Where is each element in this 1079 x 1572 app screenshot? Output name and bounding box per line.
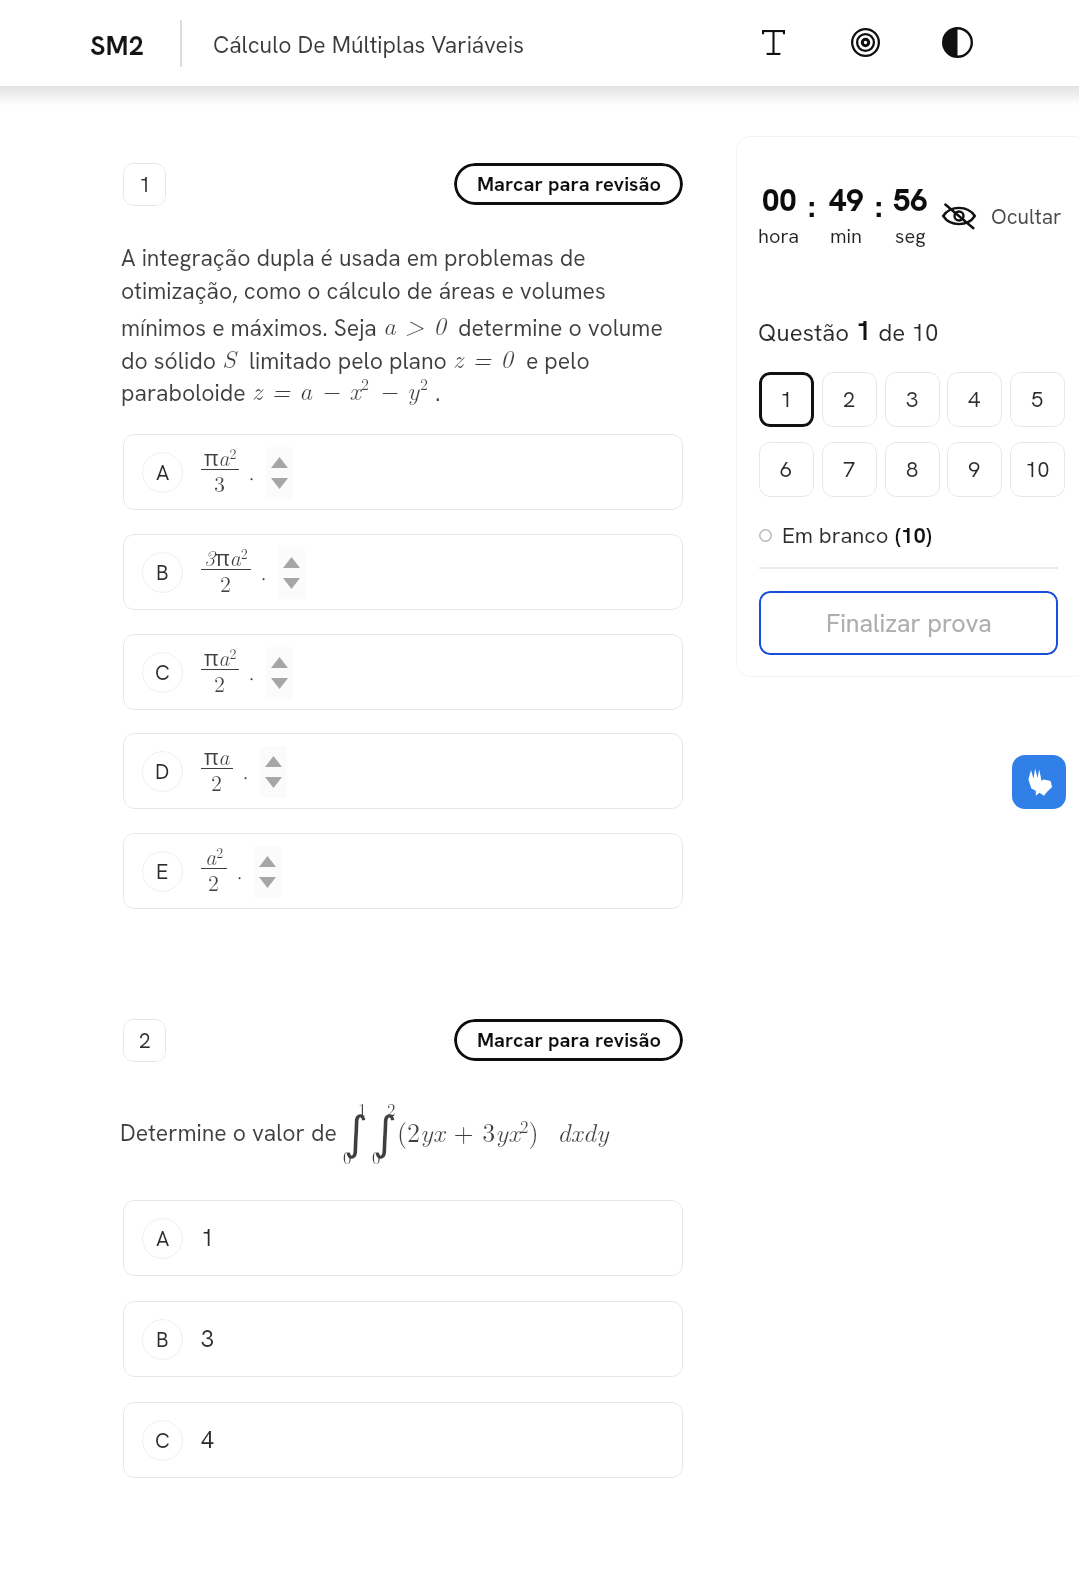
- staticText: 1: [139, 171, 151, 198]
- staticText: ·: [243, 462, 261, 493]
- staticText: a > 0: [383, 307, 446, 342]
- button[interactable]: 1: [123, 163, 166, 206]
- staticText: 2: [208, 866, 220, 897]
- staticText: 10: [1025, 455, 1050, 484]
- staticText: 1: [201, 1223, 214, 1253]
- button[interactable]: E: [123, 833, 683, 909]
- staticText: 1: [780, 385, 793, 414]
- staticText: 5: [1031, 385, 1044, 414]
- staticText: 00: [762, 180, 797, 220]
- staticText: Em branco: [782, 521, 895, 550]
- staticText: Determine o valor de: [120, 1118, 343, 1148]
- staticText: 2: [387, 1097, 396, 1121]
- staticText: − y: [370, 372, 420, 407]
- staticText: A: [156, 459, 170, 486]
- button[interactable]: 4: [947, 372, 1002, 427]
- staticText: πa2: [204, 441, 237, 472]
- staticText: ·: [243, 662, 261, 693]
- staticText: 8: [906, 455, 919, 484]
- staticText: S: [222, 340, 237, 375]
- staticText: C: [155, 659, 170, 686]
- staticText: Cálculo De Múltiplas Variáveis: [213, 30, 525, 60]
- button[interactable]: A: [123, 434, 683, 510]
- staticText: 2: [220, 567, 232, 598]
- button[interactable]: A: [123, 1200, 683, 1276]
- staticText: ·: [231, 861, 249, 892]
- button[interactable]: B: [123, 1301, 683, 1377]
- staticText: 3: [906, 385, 919, 414]
- staticText: 4: [201, 1425, 214, 1455]
- staticText: B: [156, 559, 169, 586]
- staticText: 56: [893, 180, 928, 220]
- staticText: 2: [361, 372, 370, 395]
- button[interactable]: 9: [947, 442, 1002, 497]
- staticText: 0: [343, 1145, 352, 1169]
- staticText: z = a − x: [252, 372, 361, 407]
- button[interactable]: 2: [822, 372, 877, 427]
- button[interactable]: Finalizar prova: [759, 591, 1058, 655]
- button[interactable]: 5: [1010, 372, 1065, 427]
- staticText: ·: [237, 761, 255, 792]
- staticText: seg: [895, 223, 926, 249]
- button[interactable]: B: [123, 534, 683, 610]
- staticText: do sólido: [121, 346, 222, 376]
- staticText: mínimos e máximos. Seja: [121, 313, 383, 343]
- button[interactable]: Marcar para revisão: [454, 1019, 683, 1061]
- staticText: ·: [255, 562, 273, 593]
- button[interactable]: C: [123, 1402, 683, 1478]
- staticText: SM2: [90, 28, 144, 63]
- staticText: 1: [856, 313, 872, 348]
- staticText: Marcar para revisão: [477, 171, 661, 197]
- button[interactable]: Contraste: [929, 14, 985, 70]
- staticText: hora: [758, 223, 800, 249]
- staticText: C: [155, 1427, 170, 1454]
- staticText: 1: [358, 1097, 367, 1121]
- staticText: A: [156, 1225, 170, 1252]
- staticText: paraboloide: [121, 378, 252, 408]
- staticText: min: [830, 223, 863, 249]
- staticText: 0: [372, 1145, 381, 1169]
- staticText: 2: [843, 385, 856, 414]
- button[interactable]: Em branco: [759, 521, 932, 550]
- staticText: B: [156, 1326, 169, 1353]
- staticText: 7: [843, 455, 856, 484]
- staticText: .: [429, 378, 441, 408]
- staticText: 2: [139, 1027, 151, 1054]
- staticText: 6: [780, 455, 793, 484]
- button[interactable]: Marcar para revisão: [454, 163, 683, 205]
- button[interactable]: D: [123, 733, 683, 809]
- staticText: ∫: [373, 1106, 397, 1160]
- button[interactable]: 2: [123, 1019, 166, 1062]
- staticText: (2yx + 3yx2) dxdy: [397, 1113, 609, 1150]
- staticText: :: [875, 186, 883, 226]
- staticText: otimização, como o cálculo de áreas e vo…: [121, 276, 606, 306]
- button[interactable]: Libras — tradutor de língua de sinais: [1012, 755, 1066, 809]
- staticText: e pelo: [514, 346, 590, 376]
- staticText: D: [155, 758, 170, 785]
- staticText: 3πa2: [204, 541, 248, 572]
- staticText: 4: [968, 385, 981, 414]
- staticText: 2: [211, 766, 223, 797]
- button[interactable]: 6: [759, 442, 814, 497]
- button[interactable]: Tamanho do texto: [745, 14, 801, 70]
- staticText: 2: [420, 372, 429, 395]
- staticText: 2: [214, 667, 226, 698]
- staticText: ∫: [344, 1106, 368, 1160]
- staticText: 3: [214, 467, 226, 498]
- button[interactable]: 8: [885, 442, 940, 497]
- staticText: πa: [204, 740, 230, 771]
- staticText: z = 0: [453, 340, 514, 375]
- staticText: Ocultar: [991, 203, 1062, 230]
- staticText: πa2: [204, 641, 237, 672]
- button[interactable]: 3: [885, 372, 940, 427]
- button[interactable]: 10: [1010, 442, 1065, 497]
- staticText: E: [156, 858, 169, 885]
- button[interactable]: Modo de foco: [837, 14, 893, 70]
- staticText: Finalizar prova: [826, 607, 992, 640]
- button[interactable]: 7: [822, 442, 877, 497]
- staticText: (10): [895, 521, 932, 550]
- staticText: de 10: [872, 317, 939, 348]
- button[interactable]: Ocultar: [941, 198, 1062, 234]
- button[interactable]: 1: [759, 372, 814, 427]
- button[interactable]: C: [123, 634, 683, 710]
